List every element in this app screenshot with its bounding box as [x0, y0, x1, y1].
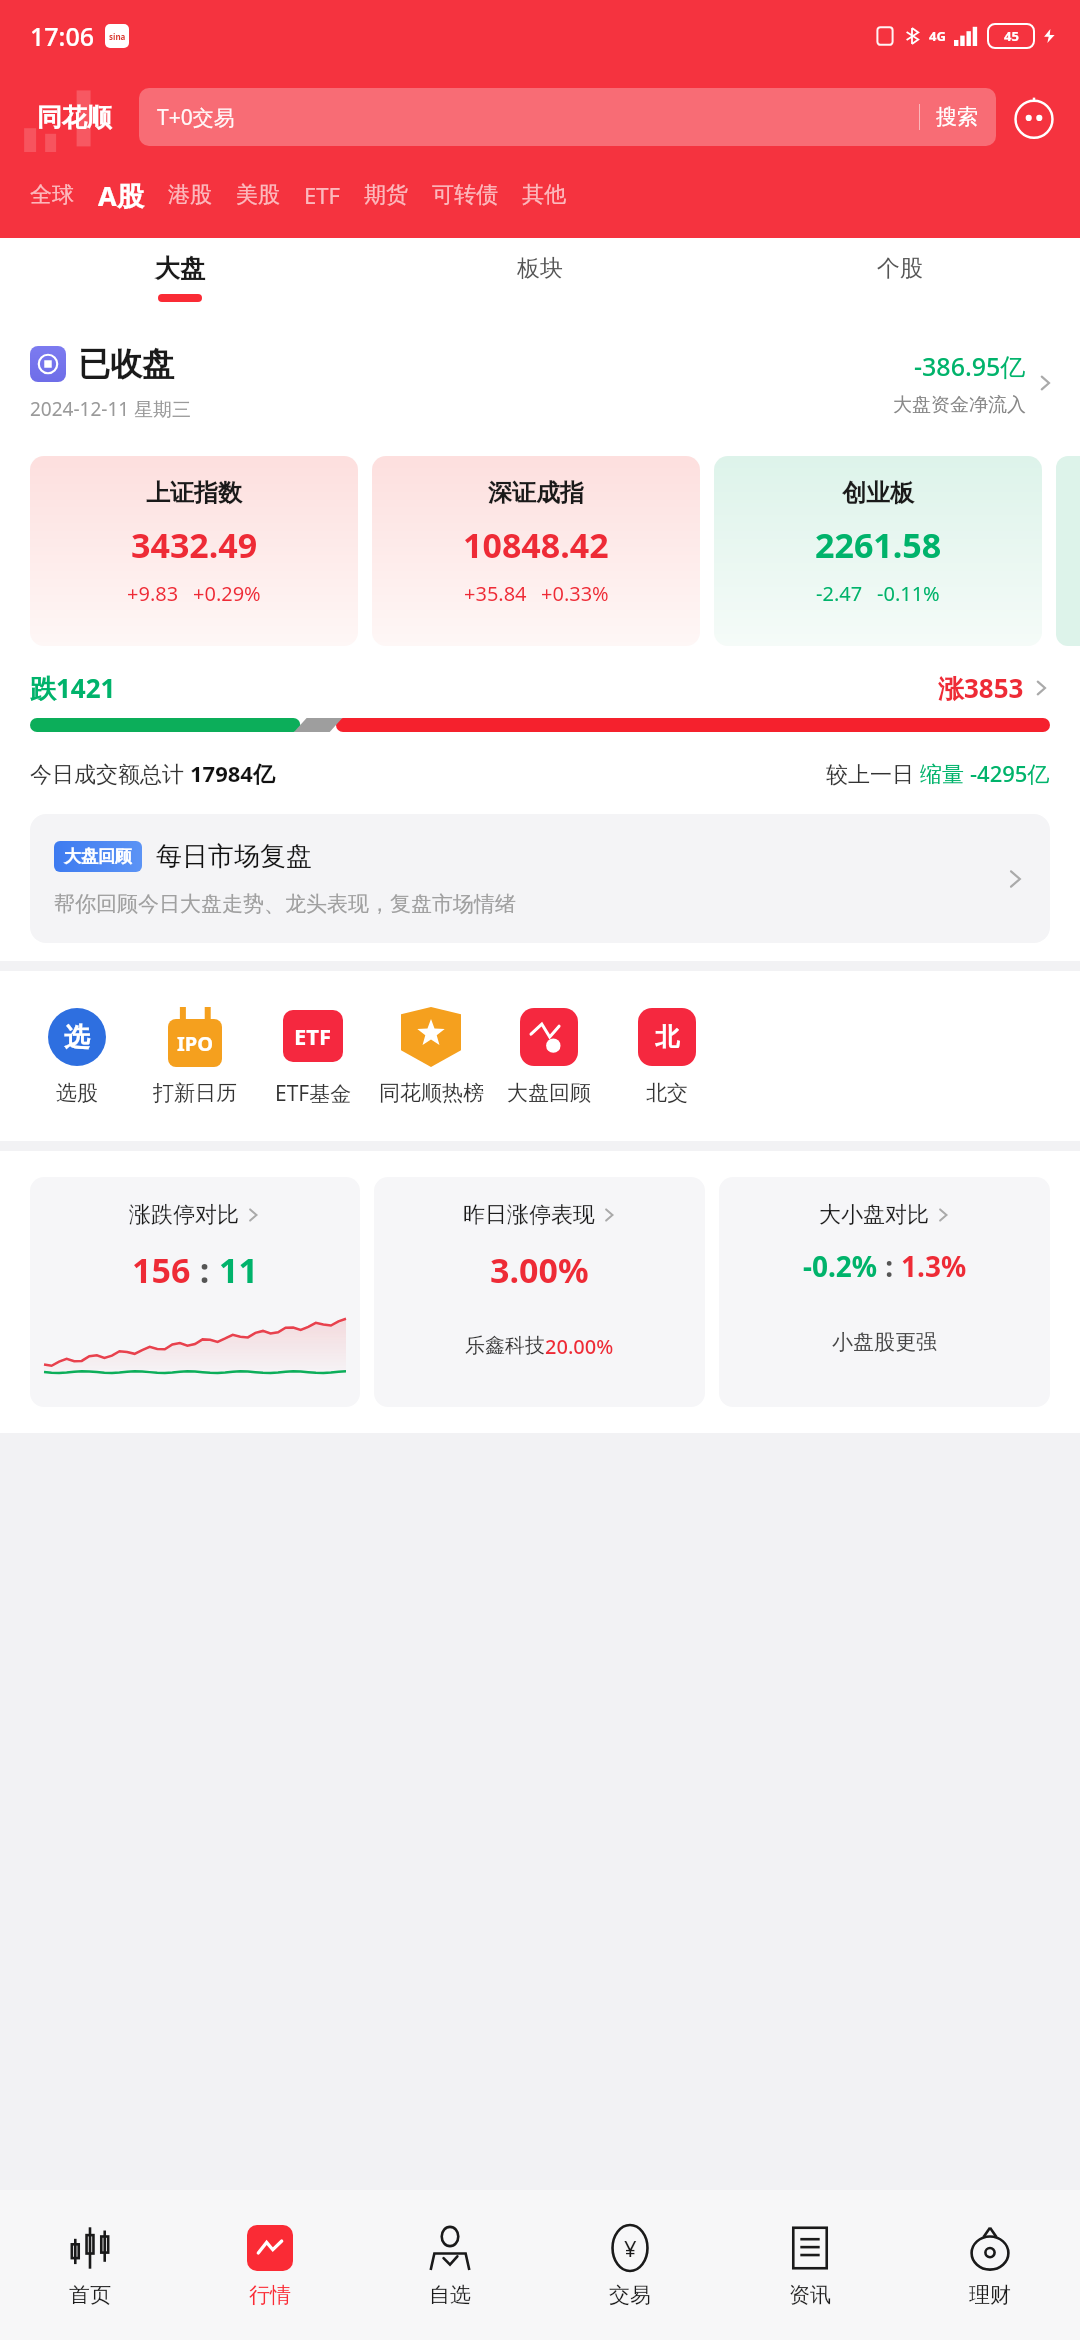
staticText: : — [878, 1247, 901, 1285]
staticText: 深证成指 — [488, 478, 584, 508]
button[interactable]: 可转债 — [420, 181, 510, 209]
staticText: 每日市场复盘 — [156, 840, 312, 873]
staticText: 交易 — [609, 2282, 651, 2308]
button[interactable]: 首页 — [0, 2190, 180, 2340]
staticText: 3.00% — [490, 1247, 589, 1293]
staticText: 大盘回顾 — [507, 1080, 591, 1106]
staticText: ¥ — [624, 2233, 637, 2263]
staticText: T+0交易 — [157, 103, 235, 132]
staticText: 选 — [64, 1021, 90, 1054]
staticText: 资讯 — [789, 2282, 831, 2308]
staticText: 首页 — [69, 2282, 111, 2308]
button[interactable]: T+0交易 — [139, 88, 996, 146]
staticText: 大小盘对比 — [819, 1201, 929, 1229]
button[interactable]: 昨日涨停表现 — [374, 1177, 705, 1407]
staticText: ETF基金 — [275, 1079, 352, 1108]
button[interactable]: 跌1421 — [30, 670, 1050, 706]
button[interactable]: 创业板 — [714, 456, 1042, 646]
staticText: 北 — [655, 1022, 679, 1052]
staticText: 4G — [929, 27, 946, 45]
button[interactable]: 大小盘对比 — [719, 1177, 1050, 1407]
staticText: 今日成交额总计 — [30, 758, 190, 788]
button[interactable]: IPO — [136, 1006, 254, 1106]
button[interactable]: 行情 — [180, 2190, 360, 2340]
button[interactable]: 个股 — [720, 238, 1080, 316]
staticText: 选股 — [56, 1080, 98, 1106]
staticText: 1.3% — [901, 1247, 967, 1285]
staticText: 小盘股更强 — [832, 1329, 937, 1355]
staticText: 帮你回顾今日大盘走势、龙头表现，复盘市场情绪 — [54, 891, 516, 917]
staticText: A股 — [98, 177, 144, 214]
staticText: -386.95亿 — [914, 349, 1026, 383]
staticText: 全球 — [30, 181, 74, 209]
staticText: +35.84 — [464, 580, 527, 607]
button[interactable]: 全球 — [18, 181, 86, 209]
staticText: +0.33% — [541, 580, 609, 607]
staticText: sina — [109, 31, 126, 42]
button[interactable]: 自选 — [360, 2190, 540, 2340]
staticText: 搜索 — [936, 104, 978, 130]
staticText: 行情 — [249, 2282, 291, 2308]
button[interactable]: 港股 — [156, 181, 224, 209]
staticText: 缩量 — [920, 758, 970, 788]
staticText: ETF — [294, 1021, 332, 1051]
staticText: IPO — [177, 1030, 214, 1057]
button[interactable]: 同花顺热榜 — [372, 1006, 490, 1106]
staticText: -0.2% — [803, 1247, 878, 1285]
staticText: 昨日涨停表现 — [463, 1201, 595, 1229]
staticText: 11 — [219, 1247, 258, 1293]
button[interactable]: 大盘回顾 — [30, 814, 1050, 943]
button[interactable]: 其他 — [510, 181, 578, 209]
staticText: 打新日历 — [153, 1080, 237, 1106]
staticText: 美股 — [236, 181, 280, 209]
staticText: 上证指数 — [146, 478, 242, 508]
staticText: 156 — [132, 1247, 191, 1293]
staticText: 港股 — [168, 181, 212, 209]
staticText: 同花顺 — [37, 102, 112, 133]
staticText: 20.00% — [545, 1333, 614, 1360]
staticText: 10848.42 — [463, 522, 609, 568]
button[interactable]: 大盘回顾 — [490, 1006, 608, 1106]
staticText: 大盘回顾 — [64, 846, 132, 867]
button[interactable]: 资讯 — [720, 2190, 900, 2340]
button[interactable]: ETF — [292, 180, 352, 210]
staticText: 板块 — [517, 254, 563, 283]
staticText: 已收盘 — [78, 344, 174, 384]
button[interactable]: 深证成指 — [372, 456, 700, 646]
staticText: 可转债 — [432, 181, 498, 209]
button[interactable]: 板块 — [360, 238, 720, 316]
staticText: 17984亿 — [190, 758, 275, 788]
button[interactable]: 北 — [608, 1006, 726, 1106]
button[interactable]: 期货 — [352, 181, 420, 209]
staticText: 17:06 — [30, 19, 95, 53]
button[interactable]: 理财 — [900, 2190, 1080, 2340]
staticText: 2261.58 — [815, 522, 942, 568]
staticText: 创业板 — [842, 478, 914, 508]
staticText: 跌1421 — [30, 670, 116, 706]
button[interactable]: A股 — [86, 177, 156, 214]
button[interactable]: 已收盘 — [0, 316, 1080, 430]
staticText: ETF — [304, 180, 340, 210]
staticText: +9.83 — [127, 580, 179, 607]
button[interactable]: 智能助手 — [1010, 93, 1058, 141]
button[interactable]: 选 — [18, 1006, 136, 1106]
staticText: 较上一日 — [826, 758, 920, 788]
staticText: -0.11% — [877, 580, 940, 607]
button[interactable]: ETF — [254, 1005, 372, 1108]
staticText: 个股 — [877, 254, 923, 283]
staticText: : — [191, 1247, 219, 1293]
button[interactable]: 大盘 — [0, 238, 360, 316]
button[interactable]: 上证指数 — [30, 456, 358, 646]
staticText: 2024-12-11 星期三 — [30, 396, 192, 422]
staticText: 涨跌停对比 — [129, 1201, 239, 1229]
staticText: 同花顺热榜 — [379, 1080, 484, 1106]
staticText: 大盘 — [155, 253, 205, 284]
button[interactable]: 涨跌停对比 — [30, 1177, 360, 1407]
staticText: 涨3853 — [938, 670, 1024, 706]
button[interactable]: 美股 — [224, 181, 292, 209]
staticText: +0.29% — [193, 580, 261, 607]
staticText: 乐鑫科技 — [465, 1333, 545, 1358]
staticText: 期货 — [364, 181, 408, 209]
staticText: 45 — [1004, 27, 1019, 45]
button[interactable]: ¥ — [540, 2190, 720, 2340]
